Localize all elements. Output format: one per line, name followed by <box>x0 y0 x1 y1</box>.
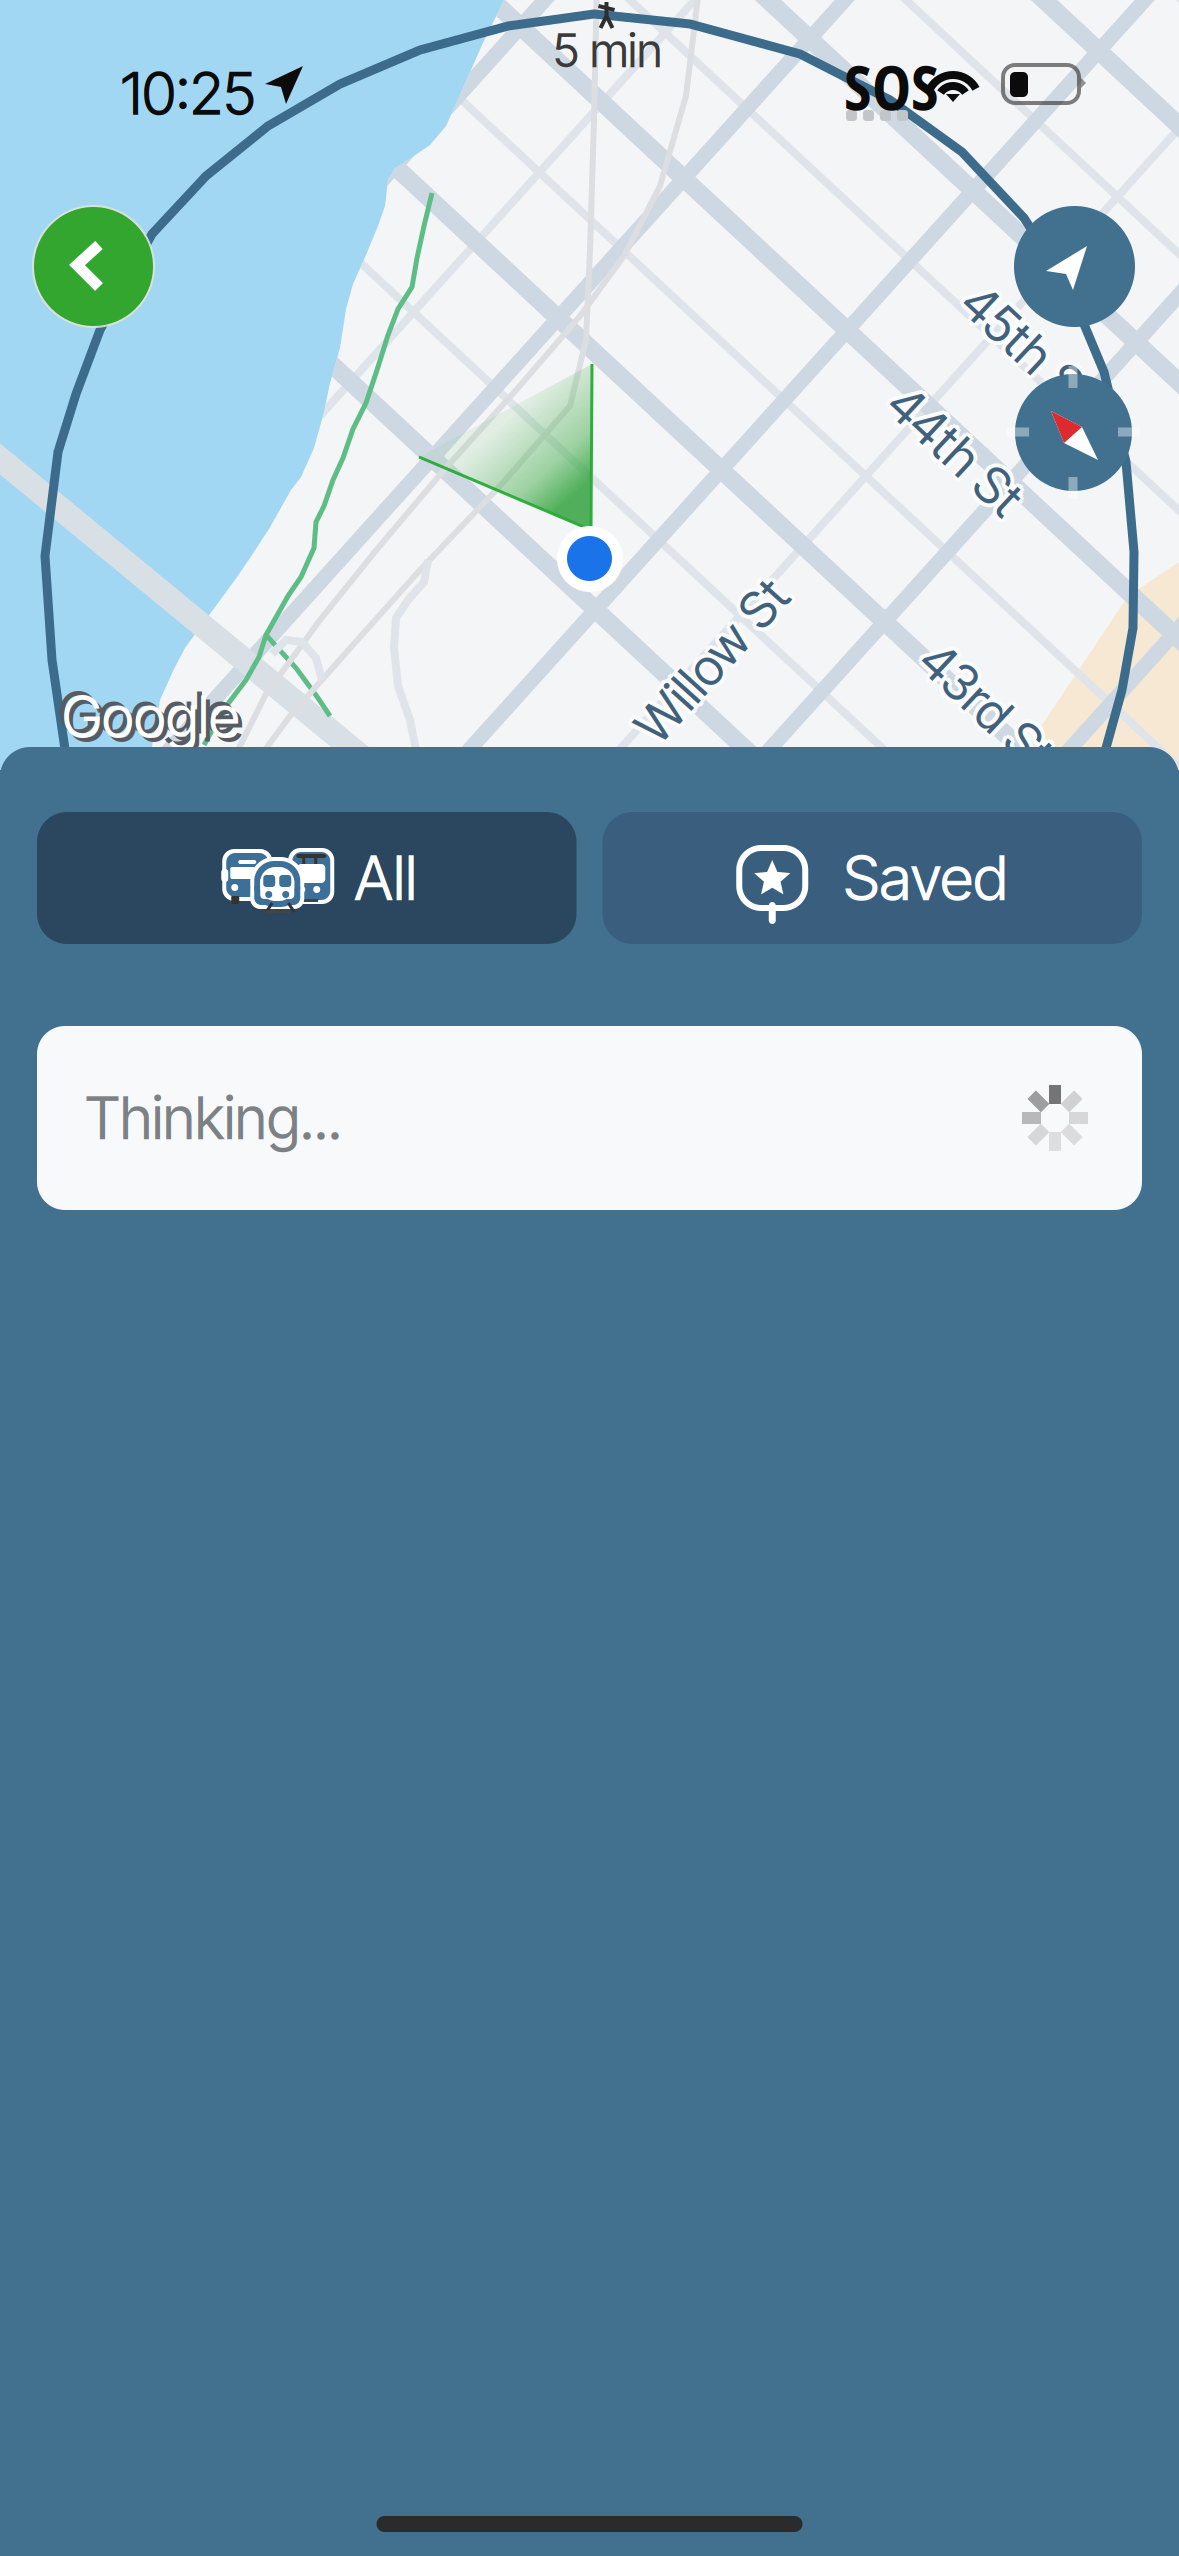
staticText: 45th St <box>945 321 1106 382</box>
staticText: 44th St <box>877 417 1040 478</box>
staticText: 45th St <box>951 315 1112 376</box>
staticText: 43rd St <box>906 672 1068 733</box>
staticText: Willow St <box>608 630 808 691</box>
staticText: 44th St <box>871 417 1034 478</box>
button[interactable]: Compass <box>1015 374 1132 491</box>
staticText: SOS <box>844 46 939 128</box>
staticText: Google <box>66 686 244 755</box>
staticText: 45th St <box>952 318 1113 379</box>
staticText: 43rd St <box>906 676 1068 737</box>
staticText: Willow St <box>609 633 809 694</box>
staticText: 43rd St <box>903 679 1065 740</box>
staticText: Willow St <box>615 633 815 694</box>
staticText: Willow St <box>612 630 812 691</box>
staticText: Saved <box>843 841 1007 915</box>
staticText: 43rd St <box>909 679 1071 740</box>
staticText: 45th St <box>944 318 1105 379</box>
staticText: 45th St <box>948 318 1109 379</box>
staticText: Google <box>58 678 236 747</box>
staticText: Thinking... <box>85 1082 342 1153</box>
staticText: 44th St <box>871 423 1034 484</box>
staticText: Google <box>62 682 240 751</box>
button[interactable]: All <box>37 812 576 944</box>
staticText: 44th St <box>874 424 1037 485</box>
button[interactable]: Recenter map <box>1014 206 1135 327</box>
staticText: 44th St <box>878 420 1041 481</box>
staticText: 45th St <box>948 322 1109 383</box>
staticText: Willow St <box>612 626 812 687</box>
staticText: Willow St <box>609 627 809 688</box>
staticText: All <box>354 841 417 915</box>
staticText: 45th St <box>945 315 1106 376</box>
staticText: Willow St <box>615 627 815 688</box>
staticText: 44th St <box>877 423 1040 484</box>
staticText: 43rd St <box>906 680 1068 741</box>
staticText: 43rd St <box>902 676 1064 737</box>
staticText: 5 min <box>553 22 662 78</box>
staticText: Willow St <box>616 630 816 691</box>
staticText: 10:25 <box>121 58 256 129</box>
button[interactable]: Saved <box>602 812 1142 944</box>
staticText: 44th St <box>874 420 1037 481</box>
staticText: 43rd St <box>903 673 1065 734</box>
staticText: 45th St <box>951 321 1112 382</box>
staticText: 45th St <box>948 314 1109 375</box>
staticText: 43rd St <box>910 676 1072 737</box>
button[interactable]: Back <box>32 205 155 328</box>
staticText: 44th St <box>870 420 1033 481</box>
staticText: 43rd St <box>909 673 1071 734</box>
staticText: Willow St <box>612 634 812 695</box>
staticText: 44th St <box>874 416 1037 477</box>
